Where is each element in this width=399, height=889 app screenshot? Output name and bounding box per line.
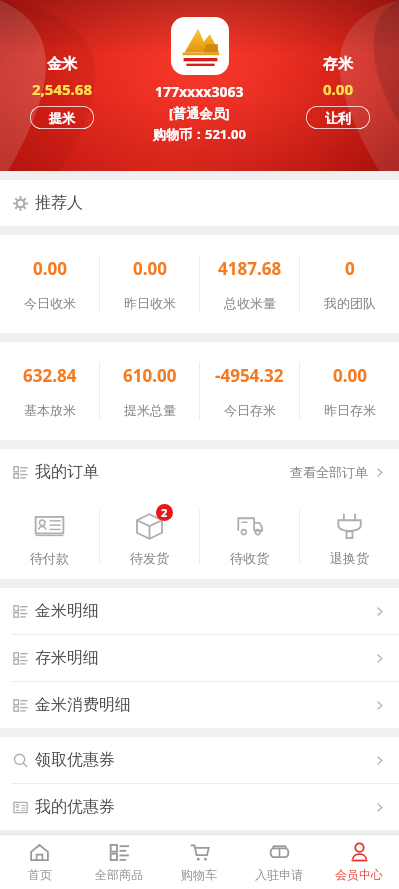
button[interactable]: 入驻申请	[239, 835, 319, 889]
button[interactable]: 0	[300, 235, 399, 333]
staticText: 会员中心	[335, 867, 383, 882]
staticText: 0.00	[323, 79, 353, 99]
staticText: 待收货	[230, 550, 269, 566]
button[interactable]: 会员中心	[319, 835, 399, 889]
staticText: 入驻申请	[255, 867, 303, 882]
staticText: 昨日存米	[324, 402, 376, 418]
button[interactable]: 4187.68	[200, 235, 299, 333]
staticText: 全部商品	[95, 867, 143, 882]
staticText: [普通会员]	[169, 104, 230, 122]
button[interactable]: 610.00	[100, 342, 199, 440]
staticText: 提米	[49, 110, 75, 126]
staticText: 购物币：521.00	[153, 125, 246, 143]
button[interactable]: 存米明细	[0, 635, 399, 681]
button[interactable]: 推荐人	[0, 180, 399, 226]
staticText: 金米消费明细	[35, 695, 131, 715]
button[interactable]: 首页	[0, 835, 79, 889]
staticText: 今日收米	[24, 295, 76, 311]
staticText: 金米	[47, 55, 77, 74]
button[interactable]: 待付款	[0, 495, 99, 579]
button[interactable]: 应用图标	[171, 17, 229, 75]
staticText: 让利	[325, 110, 351, 126]
staticText: 2,545.68	[32, 79, 92, 99]
staticText: 632.84	[23, 364, 77, 387]
button[interactable]: 632.84	[0, 342, 99, 440]
staticText: 查看全部订单	[290, 464, 368, 480]
button[interactable]: 提米	[30, 106, 94, 129]
staticText: 待付款	[30, 550, 69, 566]
staticText: 0.00	[133, 257, 167, 280]
staticText: 首页	[28, 867, 52, 882]
staticText: 昨日收米	[124, 295, 176, 311]
button[interactable]: -4954.32	[200, 342, 299, 440]
button[interactable]: 待收货	[200, 495, 299, 579]
button[interactable]: 金米消费明细	[0, 682, 399, 728]
staticText: 推荐人	[35, 193, 83, 213]
staticText: 存米	[323, 55, 353, 74]
staticText: 购物车	[181, 867, 217, 882]
staticText: 我的订单	[35, 462, 99, 482]
staticText: 2	[161, 505, 168, 520]
button[interactable]: 0.00	[300, 342, 399, 440]
staticText: 领取优惠券	[35, 750, 115, 770]
button[interactable]: 退换货	[300, 495, 399, 579]
staticText: 金米明细	[35, 601, 99, 621]
staticText: 今日存米	[224, 402, 276, 418]
staticText: 我的团队	[324, 295, 376, 311]
staticText: 610.00	[123, 364, 177, 387]
staticText: 我的优惠券	[35, 797, 115, 817]
staticText: 0.00	[333, 364, 367, 387]
button[interactable]: 全部商品	[79, 835, 159, 889]
button[interactable]: 领取优惠券	[0, 737, 399, 783]
staticText: 0.00	[33, 257, 67, 280]
staticText: -4954.32	[215, 364, 284, 387]
staticText: 总收米量	[224, 295, 276, 311]
staticText: 提米总量	[124, 402, 176, 418]
staticText: 存米明细	[35, 648, 99, 668]
staticText: 177xxxx3063	[155, 82, 244, 101]
button[interactable]: 购物车	[159, 835, 239, 889]
button[interactable]: 2	[100, 495, 199, 579]
staticText: 4187.68	[218, 257, 282, 280]
staticText: 待发货	[130, 550, 169, 566]
staticText: 基本放米	[24, 402, 76, 418]
staticText: 退换货	[330, 550, 369, 566]
staticText: 0	[345, 257, 355, 280]
button[interactable]: 金米明细	[0, 588, 399, 634]
button[interactable]: 我的订单	[0, 449, 399, 495]
button[interactable]: 0.00	[0, 235, 99, 333]
button[interactable]: 我的优惠券	[0, 784, 399, 830]
button[interactable]: 让利	[306, 106, 370, 129]
button[interactable]: 0.00	[100, 235, 199, 333]
